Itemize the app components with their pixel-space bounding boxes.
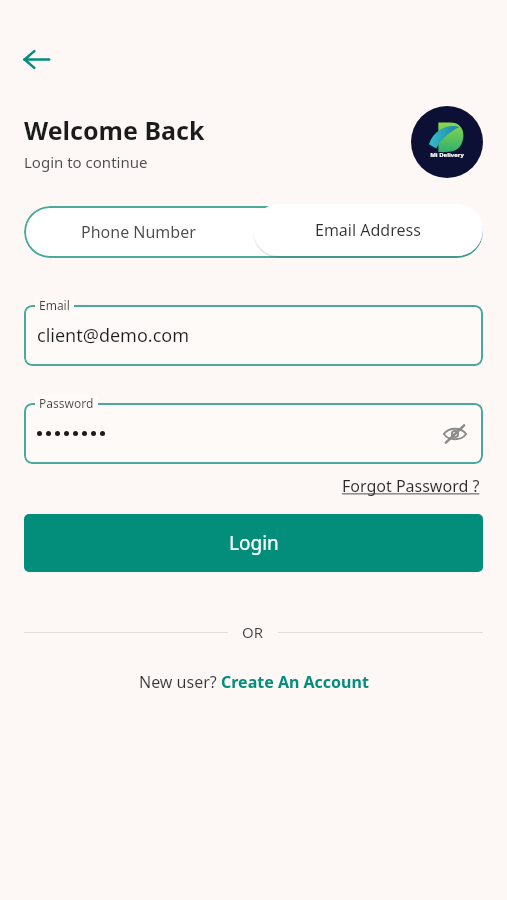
- button[interactable]: Show password: [435, 414, 475, 454]
- button[interactable]: Forgot Password ?: [339, 472, 483, 500]
- button[interactable]: [24, 305, 483, 366]
- button[interactable]: Phone Number: [24, 206, 253, 258]
- button[interactable]: Back: [13, 36, 59, 82]
- staticText: Login: [229, 530, 279, 556]
- staticText: Forgot Password ?: [342, 475, 480, 497]
- button[interactable]: Email Address: [253, 204, 483, 256]
- staticText: Login to continue: [24, 152, 148, 172]
- button[interactable]: Login: [24, 514, 483, 572]
- staticText: Create An Account: [221, 671, 369, 693]
- staticText: Email: [39, 297, 70, 313]
- button[interactable]: Create An Account: [221, 669, 369, 695]
- button[interactable]: [24, 403, 483, 464]
- staticText: client@demo.com: [37, 323, 190, 348]
- staticText: Phone Number: [81, 221, 196, 243]
- staticText: OR: [242, 622, 264, 642]
- button[interactable]: Mi Delivery logo: [411, 106, 483, 178]
- staticText: Mi Delivery: [430, 151, 464, 159]
- staticText: Email Address: [315, 219, 421, 241]
- staticText: Password: [39, 395, 94, 411]
- staticText: Welcome Back: [24, 113, 205, 147]
- staticText: New user?: [139, 671, 221, 693]
